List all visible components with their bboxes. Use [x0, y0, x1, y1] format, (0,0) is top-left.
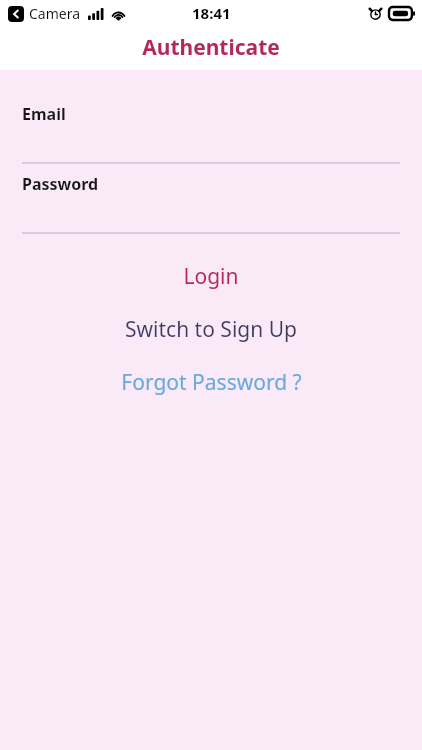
button[interactable]: Forgot Password ? — [0, 356, 422, 409]
staticText: Email — [22, 103, 66, 125]
staticText: Forgot Password ? — [121, 368, 302, 397]
staticText: Authenticate — [0, 33, 422, 62]
staticText: 18:41 — [192, 3, 231, 23]
button[interactable]: Login — [0, 250, 422, 303]
other: Back to Camera — [8, 6, 24, 22]
staticText: Switch to Sign Up — [125, 315, 297, 344]
staticText: Login — [183, 262, 239, 291]
button[interactable]: Switch to Sign Up — [0, 303, 422, 356]
staticText: Password — [22, 173, 99, 195]
staticText: Camera — [29, 4, 81, 23]
